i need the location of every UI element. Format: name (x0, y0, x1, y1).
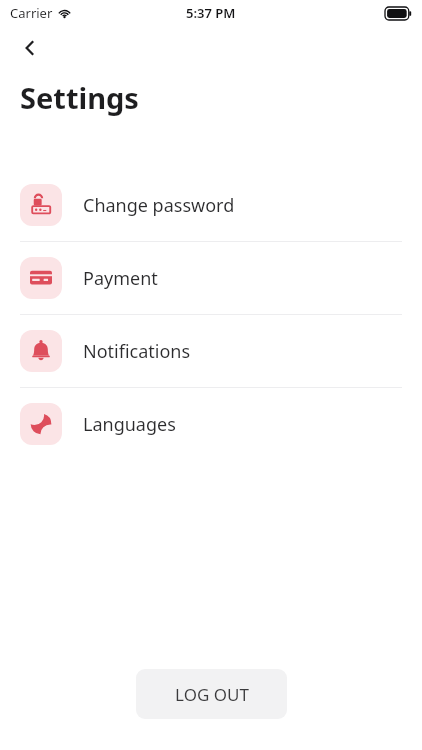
button[interactable]: Back (8, 26, 52, 70)
staticText: Languages (83, 412, 176, 437)
staticText: Change password (83, 193, 235, 218)
staticText: LOG OUT (175, 683, 249, 706)
staticText: Notifications (83, 339, 191, 364)
staticText: 5:37 PM (186, 4, 236, 22)
staticText: Settings (20, 78, 139, 117)
staticText: Carrier (10, 4, 53, 22)
button[interactable]: Languages (0, 388, 422, 460)
button[interactable]: LOG OUT (136, 669, 287, 719)
button[interactable]: Notifications (0, 315, 422, 387)
button[interactable]: Payment (0, 242, 422, 314)
button[interactable]: Change password (0, 169, 422, 241)
staticText: Payment (83, 266, 158, 291)
